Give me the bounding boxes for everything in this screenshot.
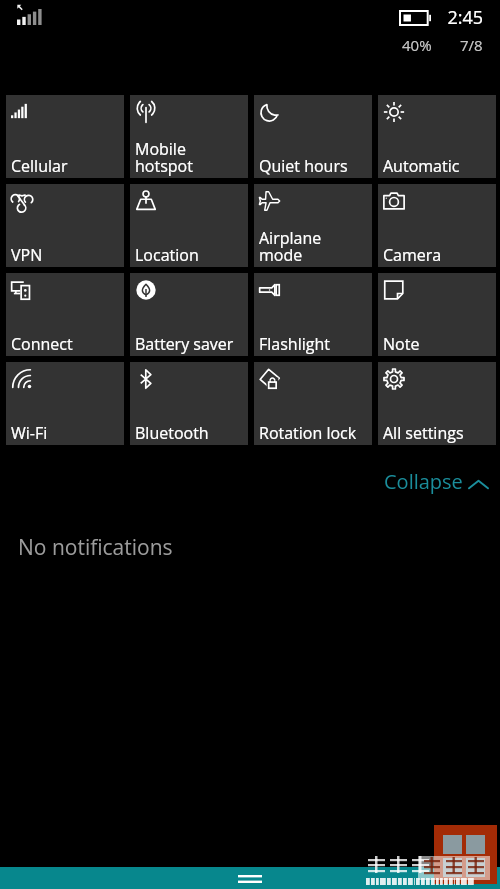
staticText: Automatic bbox=[383, 155, 460, 177]
staticText: Note bbox=[383, 333, 420, 355]
button[interactable]: Bluetooth bbox=[130, 362, 248, 445]
staticText: Location bbox=[135, 244, 199, 266]
staticText: Connect bbox=[11, 333, 73, 355]
staticText: Quiet hours bbox=[259, 155, 348, 177]
button[interactable]: Camera bbox=[378, 184, 496, 267]
staticText: Airplane mode bbox=[259, 227, 322, 266]
staticText: Bluetooth bbox=[135, 422, 209, 444]
button[interactable]: All settings bbox=[378, 362, 496, 445]
staticText: Flashlight bbox=[259, 333, 330, 355]
button[interactable]: VPN bbox=[6, 184, 124, 267]
staticText: Wi-Fi bbox=[11, 422, 48, 444]
staticText: All settings bbox=[383, 422, 464, 444]
staticText: VPN bbox=[11, 244, 43, 266]
staticText: Mobile hotspot bbox=[135, 138, 193, 177]
button[interactable]: Menu bbox=[222, 867, 278, 889]
button[interactable]: Cellular bbox=[6, 95, 124, 178]
staticText: No notifications bbox=[18, 533, 173, 562]
staticText: Camera bbox=[383, 244, 442, 266]
button[interactable]: Battery saver bbox=[130, 273, 248, 356]
button[interactable]: Location bbox=[130, 184, 248, 267]
button[interactable]: Automatic bbox=[378, 95, 496, 178]
staticText: 2:45 bbox=[447, 5, 483, 30]
button[interactable]: Quiet hours bbox=[254, 95, 372, 178]
button[interactable]: Wi-Fi bbox=[6, 362, 124, 445]
button[interactable]: Note bbox=[378, 273, 496, 356]
staticText: Battery saver bbox=[135, 333, 234, 355]
staticText: Rotation lock bbox=[259, 422, 357, 444]
button[interactable]: Flashlight bbox=[254, 273, 372, 356]
button[interactable]: Collapse bbox=[384, 464, 489, 498]
staticText: Cellular bbox=[11, 155, 68, 177]
button[interactable]: Connect bbox=[6, 273, 124, 356]
button[interactable]: Mobile hotspot bbox=[130, 95, 248, 178]
button[interactable]: Airplane mode bbox=[254, 184, 372, 267]
staticText: 40% bbox=[402, 35, 432, 55]
staticText: 7/8 bbox=[460, 35, 483, 55]
staticText: Collapse bbox=[384, 468, 463, 495]
button[interactable]: Rotation lock bbox=[254, 362, 372, 445]
